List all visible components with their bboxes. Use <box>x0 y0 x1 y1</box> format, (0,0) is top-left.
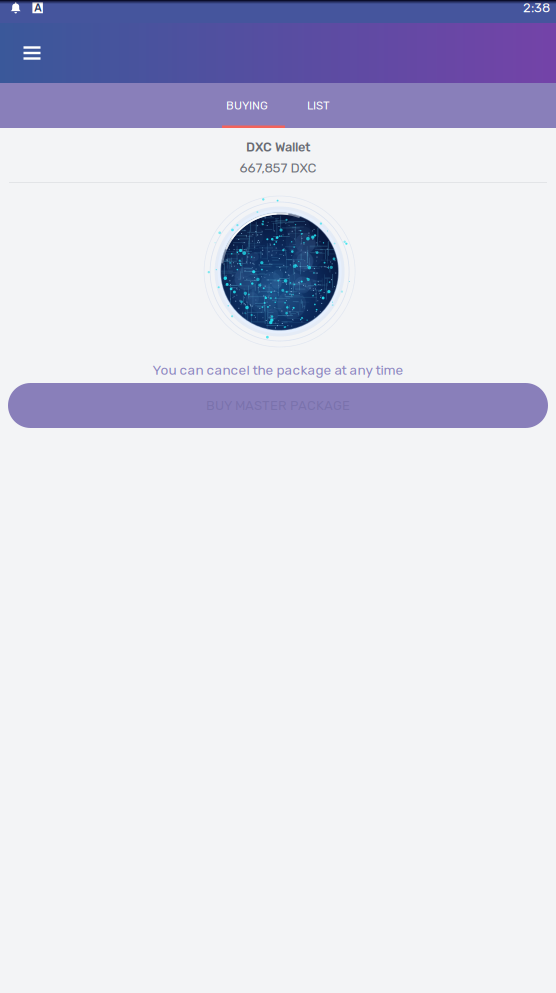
staticText: LIST <box>307 99 330 112</box>
staticText: DXC Wallet <box>246 139 310 155</box>
staticText: 667,857 DXC <box>239 160 316 176</box>
staticText: A <box>34 1 41 14</box>
button[interactable]: BUY MASTER PACKAGE <box>8 383 548 428</box>
staticText: BUYING <box>226 99 268 112</box>
staticText: You can cancel the package at any time <box>152 362 403 378</box>
staticText: BUY MASTER PACKAGE <box>206 398 350 413</box>
button[interactable]: BUYING <box>215 83 278 128</box>
button[interactable]: Open navigation menu <box>11 32 53 74</box>
button[interactable]: LIST <box>296 83 340 128</box>
staticText: 2:38 <box>523 0 550 15</box>
